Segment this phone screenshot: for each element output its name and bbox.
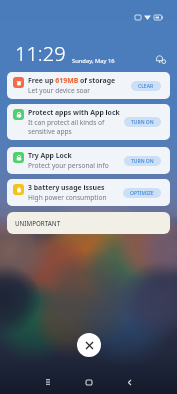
staticText: 11:29	[15, 40, 66, 67]
button[interactable]: CLEAR	[131, 81, 161, 91]
button[interactable]: Free up 619MB of storage	[7, 72, 170, 99]
staticText: Protect apps with App lock	[28, 108, 120, 117]
button[interactable]: Notification settings	[153, 51, 169, 67]
staticText: CLEAR	[138, 83, 154, 90]
staticText: OPTIMIZE	[130, 190, 154, 197]
button[interactable]: Try App Lock	[7, 147, 170, 174]
staticText: 3 battery usage issues	[28, 183, 105, 192]
staticText: High power consumption	[28, 193, 107, 202]
staticText: TURN ON	[131, 119, 154, 126]
staticText: Sunday, May 16	[72, 57, 115, 65]
staticText: Let your device soar	[28, 86, 90, 95]
staticText: UNIMPORTANT	[15, 219, 61, 227]
button[interactable]: TURN ON	[124, 117, 161, 127]
staticText: It can protect all kinds of	[28, 118, 105, 127]
staticText: Try App Lock	[28, 151, 72, 160]
button[interactable]: Back	[119, 372, 139, 392]
button[interactable]: OPTIMIZE	[123, 188, 161, 198]
button[interactable]: Protect apps with App lock	[7, 104, 170, 140]
button[interactable]: UNIMPORTANT	[7, 212, 170, 234]
staticText: Free up 619MB of storage	[28, 76, 116, 85]
staticText: Protect your personal info	[28, 161, 109, 170]
staticText: sensitive apps	[28, 127, 72, 136]
button[interactable]: Home	[79, 372, 99, 392]
staticText: TURN ON	[131, 158, 154, 165]
button[interactable]: Recents	[38, 372, 58, 392]
button[interactable]: 3 battery usage issues	[7, 179, 170, 206]
button[interactable]: TURN ON	[124, 156, 161, 166]
button[interactable]: Close	[77, 333, 101, 357]
